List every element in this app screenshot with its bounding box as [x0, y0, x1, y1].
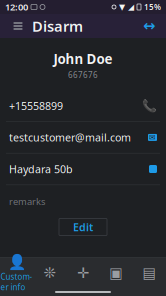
button[interactable]: ▤ [133, 258, 166, 288]
button[interactable]: ❊ [33, 258, 66, 288]
button[interactable]: Customer info [0, 258, 33, 288]
staticText: Haydara 50b [9, 162, 73, 176]
staticText: 15% [144, 2, 161, 12]
staticText: ❊ [44, 265, 56, 281]
staticText: remarks [9, 195, 45, 207]
staticText: ✉ [149, 133, 156, 142]
staticText: ▣ [109, 265, 123, 281]
button[interactable]: ✛ [66, 258, 100, 288]
button[interactable]: Edit [59, 218, 107, 235]
staticText: ↔ [143, 18, 155, 34]
staticText: ◢ [128, 2, 134, 12]
staticText: Disarm [32, 16, 83, 36]
staticText: ✛ [77, 265, 89, 281]
button[interactable]: Toggle arm state [138, 15, 160, 37]
button[interactable]: Menu [6, 14, 30, 38]
staticText: ▤ [142, 265, 156, 281]
staticText: Customer info [1, 271, 33, 292]
button[interactable]: Call +15558899 [0, 90, 166, 122]
staticText: +15558899 [9, 99, 63, 113]
button[interactable]: Email testcustomer@mail.com [0, 122, 166, 153]
staticText: 12:00 [5, 1, 28, 13]
staticText: ▼ [119, 2, 125, 12]
button[interactable]: ▣ [100, 258, 133, 288]
staticText: 👤 [8, 253, 26, 270]
staticText: 667676 [68, 70, 98, 80]
staticText: testcustomer@mail.com [9, 130, 131, 144]
button[interactable]: Open address Haydara 50b [0, 153, 166, 185]
staticText: Edit [73, 220, 93, 234]
staticText: John Doe [53, 50, 112, 68]
staticText: 📞 [142, 99, 157, 113]
